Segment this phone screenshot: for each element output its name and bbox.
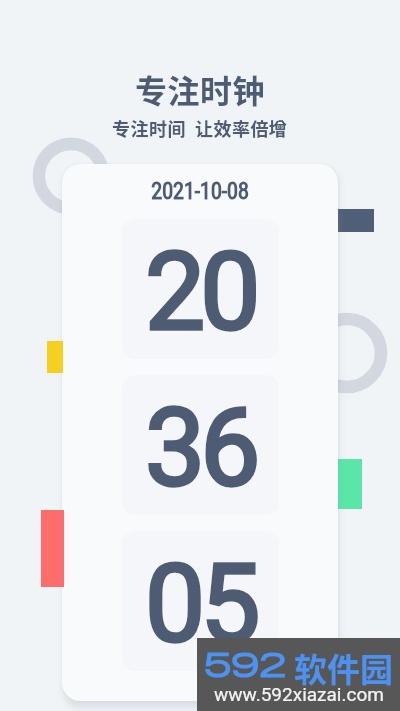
button[interactable]: minutes 36 xyxy=(122,375,279,515)
staticText: www.592xiazai.com xyxy=(214,683,384,705)
button[interactable]: 592 软件园 www.592xiazai.com xyxy=(197,638,400,711)
button[interactable]: 2021-10-08 xyxy=(151,178,249,205)
staticText: 36 xyxy=(145,386,256,511)
button[interactable]: seconds 05 xyxy=(122,531,279,671)
staticText: 592 xyxy=(204,644,287,685)
staticText: 05 xyxy=(145,542,256,667)
staticText: 20 xyxy=(145,230,256,355)
button[interactable]: hours 20 xyxy=(122,219,279,359)
staticText: 软件园 xyxy=(294,644,393,692)
staticText: 专注时间 让效率倍增 xyxy=(112,115,288,141)
staticText: 专注时钟 xyxy=(135,66,265,112)
staticText: 2021-10-08 xyxy=(151,178,249,205)
